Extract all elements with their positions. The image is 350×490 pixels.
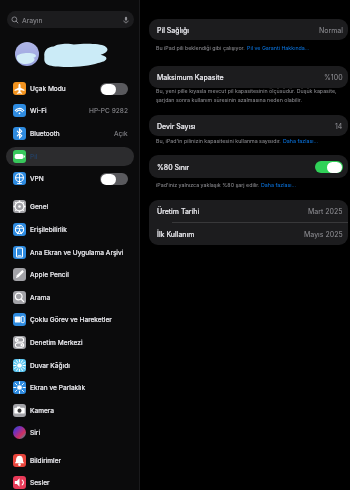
button[interactable]: Sesler bbox=[6, 473, 134, 490]
staticText: Duvar Kâğıdı bbox=[30, 362, 70, 370]
staticText: Arama bbox=[30, 294, 51, 302]
staticText: Kamera bbox=[30, 407, 54, 415]
button[interactable]: Bluetooth bbox=[6, 124, 134, 143]
staticText: Uçak Modu bbox=[30, 85, 66, 93]
staticText: Üretim Tarihi bbox=[157, 207, 200, 215]
staticText: Bu, yeni pille kıyasla mevcut pil kapasi… bbox=[156, 88, 343, 103]
staticText: Çoklu Görev ve Hareketler bbox=[30, 316, 112, 324]
staticText: Erişilebilirlik bbox=[30, 226, 67, 234]
button[interactable]: Siri bbox=[6, 423, 134, 442]
staticText: Bluetooth bbox=[30, 130, 60, 138]
staticText: 14 bbox=[335, 122, 343, 130]
button[interactable]: Maksimum Kapasite bbox=[149, 66, 348, 88]
staticText: Siri bbox=[30, 429, 41, 437]
staticText: Açık bbox=[114, 130, 128, 138]
staticText: HP-PC 9282 bbox=[89, 107, 128, 115]
button[interactable]: Wi-Fi bbox=[6, 101, 134, 120]
button[interactable]: Toggle off bbox=[100, 83, 128, 95]
button[interactable]: Bildirimler bbox=[6, 451, 134, 470]
button[interactable]: Ekran ve Parlaklık bbox=[6, 378, 134, 397]
button[interactable]: Kamera bbox=[6, 401, 134, 420]
button[interactable]: Ana Ekran ve Uygulama Arşivi bbox=[6, 243, 134, 262]
button[interactable]: %80 Sınır bbox=[149, 155, 348, 178]
staticText: Normal bbox=[319, 26, 343, 34]
staticText: Ana Ekran ve Uygulama Arşivi bbox=[30, 249, 124, 257]
staticText: Genel bbox=[30, 203, 49, 211]
staticText: Arayın bbox=[22, 16, 43, 24]
staticText: Daha fazlası... bbox=[261, 182, 297, 188]
staticText: %80 Sınır bbox=[157, 163, 190, 171]
button[interactable]: Arama bbox=[6, 288, 134, 307]
staticText: Daha fazlası... bbox=[283, 138, 319, 144]
button[interactable]: Çoklu Görev ve Hareketler bbox=[6, 310, 134, 329]
button[interactable]: Toggle off bbox=[100, 173, 128, 185]
staticText: VPN bbox=[30, 175, 44, 183]
button[interactable]: Üretim Tarihi bbox=[149, 200, 348, 222]
button[interactable]: Genel bbox=[6, 197, 134, 216]
staticText: Bildirimler bbox=[30, 457, 62, 465]
staticText: Pil ve Garanti Hakkında... bbox=[247, 45, 310, 51]
button[interactable]: Denetim Merkezi bbox=[6, 333, 134, 352]
button[interactable]: Apple Pencil bbox=[6, 265, 134, 284]
staticText: Pil Sağlığı bbox=[157, 26, 189, 34]
staticText: Mayıs 2025 bbox=[304, 230, 343, 238]
staticText: Mart 2025 bbox=[308, 207, 343, 215]
button[interactable]: VPN bbox=[6, 169, 134, 188]
staticText: Maksimum Kapasite bbox=[157, 73, 224, 81]
staticText: Apple Pencil bbox=[30, 271, 69, 279]
button[interactable] bbox=[0, 37, 140, 71]
staticText: Devir Sayısı bbox=[157, 122, 196, 130]
button[interactable]: Pil bbox=[6, 147, 134, 166]
staticText: Denetim Merkezi bbox=[30, 339, 83, 347]
staticText: Ekran ve Parlaklık bbox=[30, 384, 86, 392]
button[interactable]: Pil Sağlığı bbox=[149, 19, 348, 40]
button[interactable]: Uçak Modu bbox=[6, 79, 134, 98]
button[interactable]: Arayın bbox=[7, 11, 134, 28]
button[interactable]: Duvar Kâğıdı bbox=[6, 356, 134, 375]
staticText: Sesler bbox=[30, 479, 50, 487]
staticText: Bu, iPad'in pilinizin kapasitesini kulla… bbox=[156, 138, 283, 144]
staticText: iPad'iniz yalnızca yaklaşık %80 şarj edi… bbox=[156, 182, 261, 188]
button[interactable]: Toggle on bbox=[315, 161, 343, 173]
button[interactable]: İlk Kullanım bbox=[149, 223, 348, 245]
staticText: Pil bbox=[30, 153, 38, 161]
staticText: Wi-Fi bbox=[30, 107, 47, 115]
staticText: %100 bbox=[324, 73, 343, 81]
staticText: İlk Kullanım bbox=[157, 230, 195, 238]
staticText: Bu iPad pili beklendiği gibi çalışıyor. bbox=[156, 45, 247, 51]
button[interactable]: Devir Sayısı bbox=[149, 115, 348, 136]
button[interactable]: Erişilebilirlik bbox=[6, 220, 134, 239]
